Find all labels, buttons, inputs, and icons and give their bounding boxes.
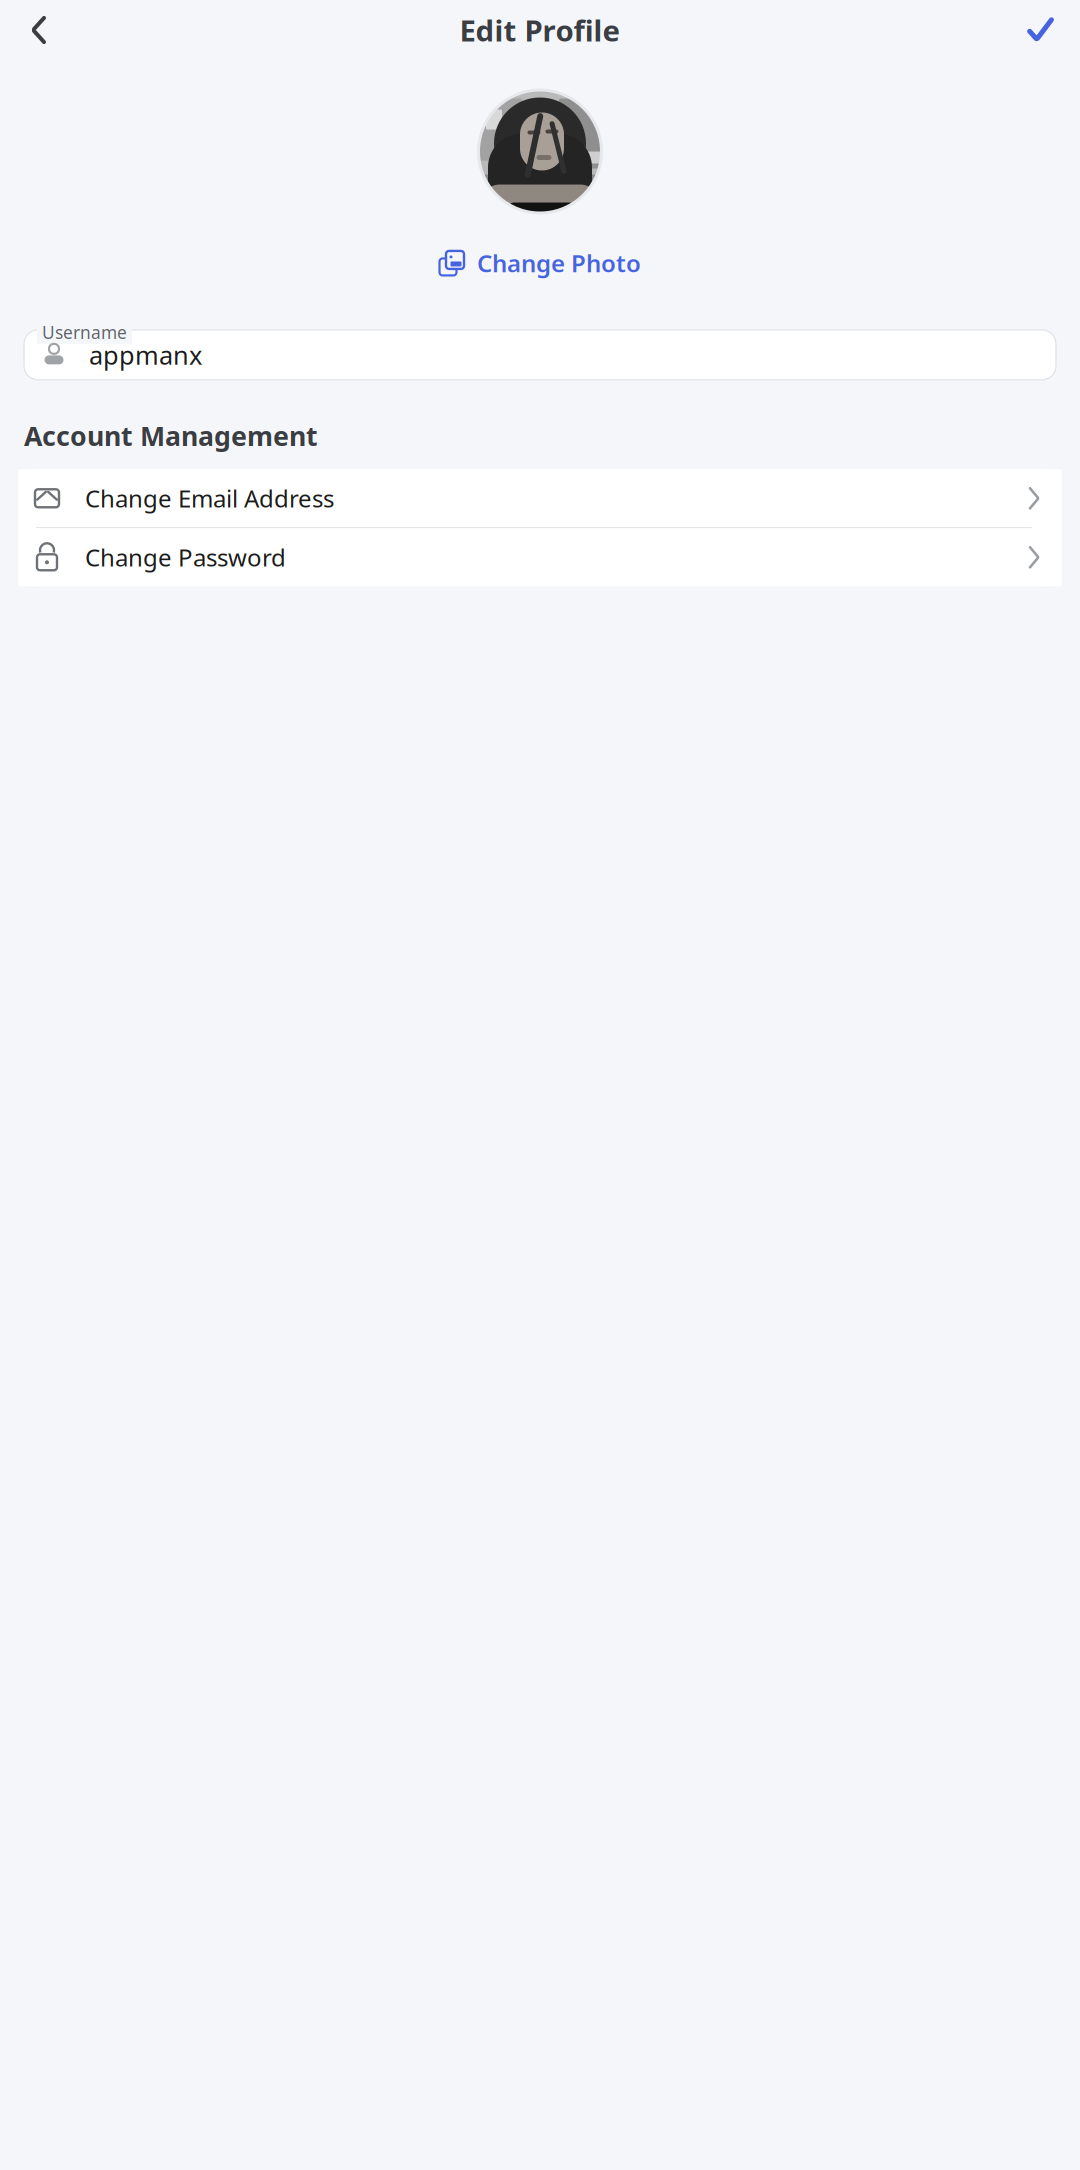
button[interactable]: Back	[12, 8, 66, 52]
staticText: Account Management	[24, 418, 318, 453]
staticText: Change Photo	[477, 247, 641, 279]
staticText: Change Email Address	[85, 482, 334, 514]
staticText: appmanx	[89, 338, 202, 372]
staticText: Change Password	[85, 541, 286, 573]
button[interactable]: Change Photo	[425, 239, 655, 287]
staticText: Username	[42, 321, 127, 344]
button[interactable]: Save	[1014, 8, 1068, 52]
button[interactable]: Change Email Address	[18, 469, 1062, 527]
staticText: Edit Profile	[459, 10, 620, 49]
button[interactable]: Change Password	[18, 528, 1062, 586]
